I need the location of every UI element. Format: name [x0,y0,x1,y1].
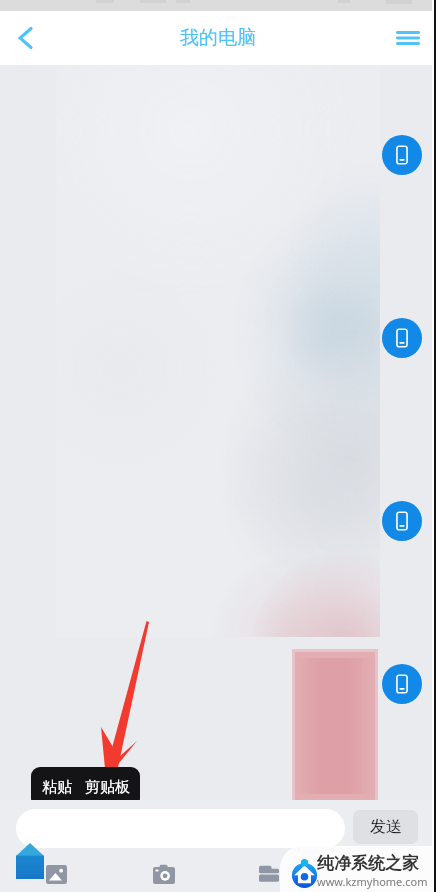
staticText: 剪贴板 [85,778,130,797]
button[interactable] [16,809,345,848]
button[interactable]: Gallery [34,852,78,892]
button[interactable]: Camera [142,853,186,892]
button[interactable]: Files [247,851,291,892]
button[interactable]: Contact avatar [382,501,422,541]
staticText: 我的电脑 [180,26,256,50]
button[interactable]: 剪贴板 [82,778,133,797]
staticText: 粘贴 [42,778,72,797]
staticText: www.kzmyhome.com [317,874,428,889]
button[interactable]: 发送 [353,810,418,844]
button[interactable]: Menu [386,16,430,60]
staticText: 纯净系统之家 [317,853,419,874]
button[interactable]: Back [4,16,48,60]
button[interactable]: 粘贴 [39,778,75,797]
button[interactable]: Contact avatar [382,318,422,358]
button[interactable]: Contact avatar [382,664,422,704]
button[interactable]: Contact avatar [382,135,422,175]
staticText: 发送 [370,817,402,837]
